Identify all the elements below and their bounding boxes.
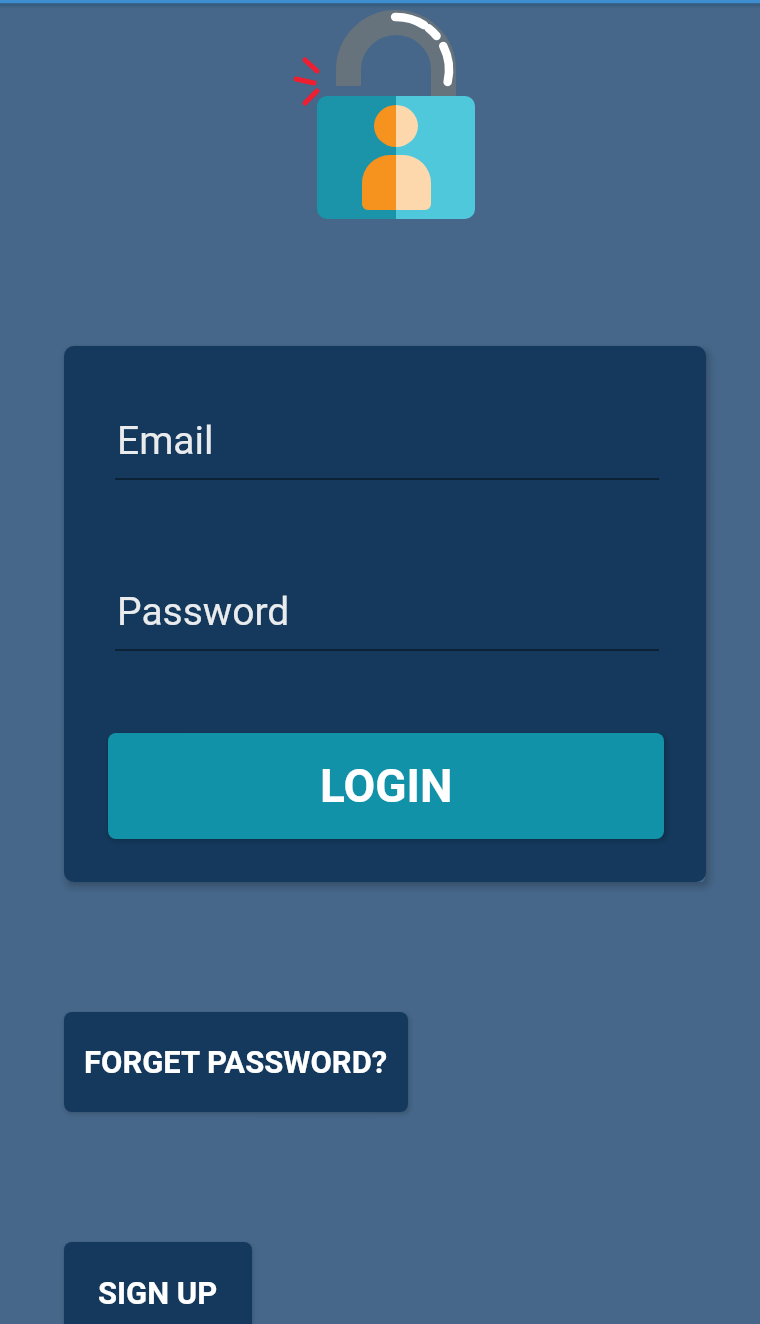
button[interactable]: Password [115,573,659,651]
staticText: Email [117,418,214,464]
staticText: LOGIN [320,759,453,813]
staticText: SIGN UP [98,1275,218,1311]
button[interactable]: Email [115,402,659,480]
staticText: Password [117,589,290,635]
button[interactable]: SIGN UP [64,1242,252,1324]
button[interactable]: LOGIN [108,733,664,839]
button[interactable]: FORGET PASSWORD? [64,1012,408,1112]
staticText: FORGET PASSWORD? [84,1044,388,1080]
